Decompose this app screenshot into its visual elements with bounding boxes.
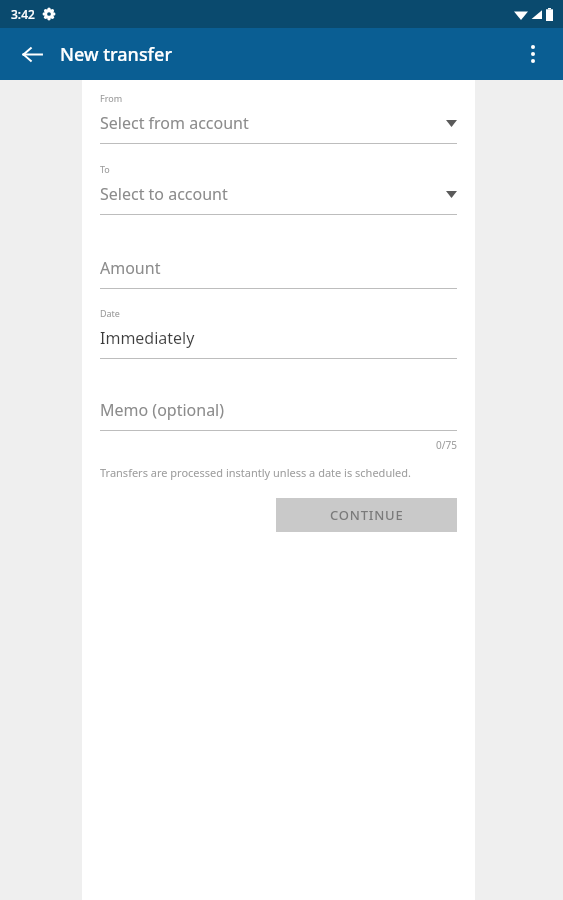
button[interactable]: Amount	[100, 257, 457, 279]
staticText: Select to account	[100, 183, 228, 205]
staticText: 0/75	[100, 438, 457, 452]
staticText: Amount	[100, 257, 161, 279]
staticText: From	[100, 92, 123, 104]
staticText: 3:42	[11, 6, 35, 22]
staticText: Memo (optional)	[100, 399, 225, 421]
staticText: Transfers are processed instantly unless…	[100, 465, 411, 480]
button[interactable]: Immediately	[100, 327, 457, 349]
staticText: New transfer	[60, 42, 172, 67]
staticText: To	[100, 163, 110, 175]
button[interactable]: Select to account	[100, 183, 457, 205]
staticText: Immediately	[100, 327, 195, 349]
button[interactable]: More options	[511, 32, 555, 76]
staticText: Date	[100, 307, 120, 319]
button[interactable]: Select from account	[100, 112, 457, 134]
staticText: Select from account	[100, 112, 249, 134]
button[interactable]: Back	[10, 32, 54, 76]
button[interactable]: Memo (optional)	[100, 399, 457, 421]
button[interactable]: CONTINUE	[276, 498, 457, 532]
staticText: CONTINUE	[330, 506, 404, 524]
